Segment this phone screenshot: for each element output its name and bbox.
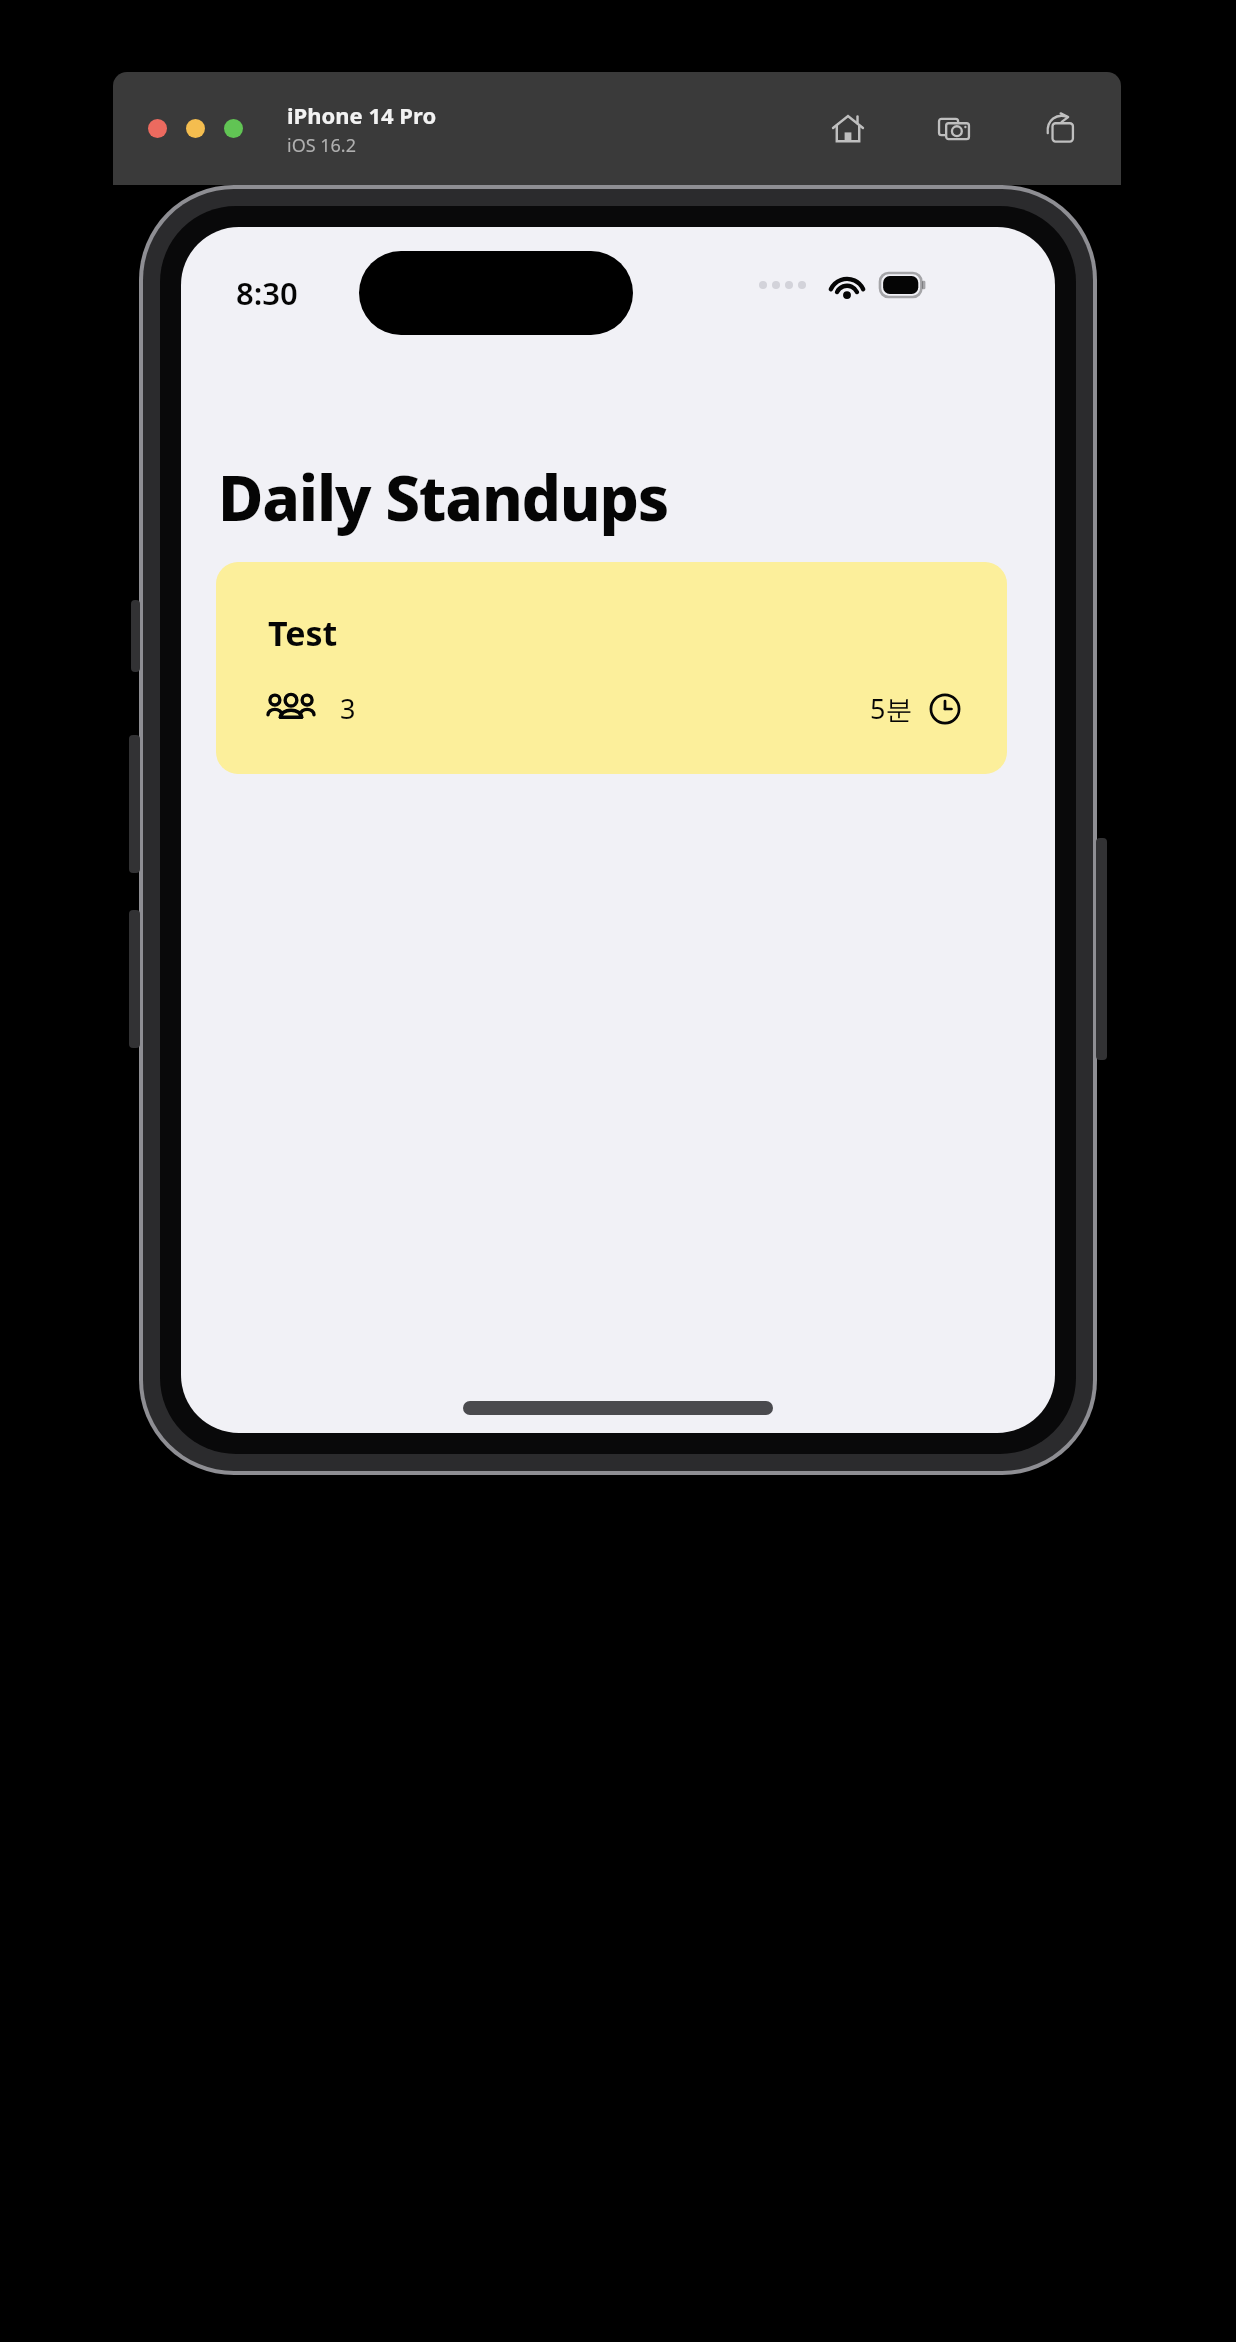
button[interactable]: Close	[148, 119, 167, 138]
button[interactable]: Zoom	[224, 119, 243, 138]
staticText: iPhone 14 Pro	[287, 100, 437, 130]
staticText: Test	[268, 610, 338, 656]
button[interactable]: Home	[825, 106, 871, 152]
button[interactable]: Screenshot	[931, 106, 977, 152]
button[interactable]: Test	[216, 562, 1007, 774]
staticText: 8:30	[236, 272, 298, 314]
staticText: 3	[340, 690, 356, 727]
button[interactable]: Rotate	[1037, 106, 1083, 152]
staticText: iOS 16.2	[287, 133, 356, 158]
staticText: 5분	[870, 690, 913, 727]
staticText: Daily Standups	[218, 455, 669, 539]
button[interactable]: Minimise	[186, 119, 205, 138]
